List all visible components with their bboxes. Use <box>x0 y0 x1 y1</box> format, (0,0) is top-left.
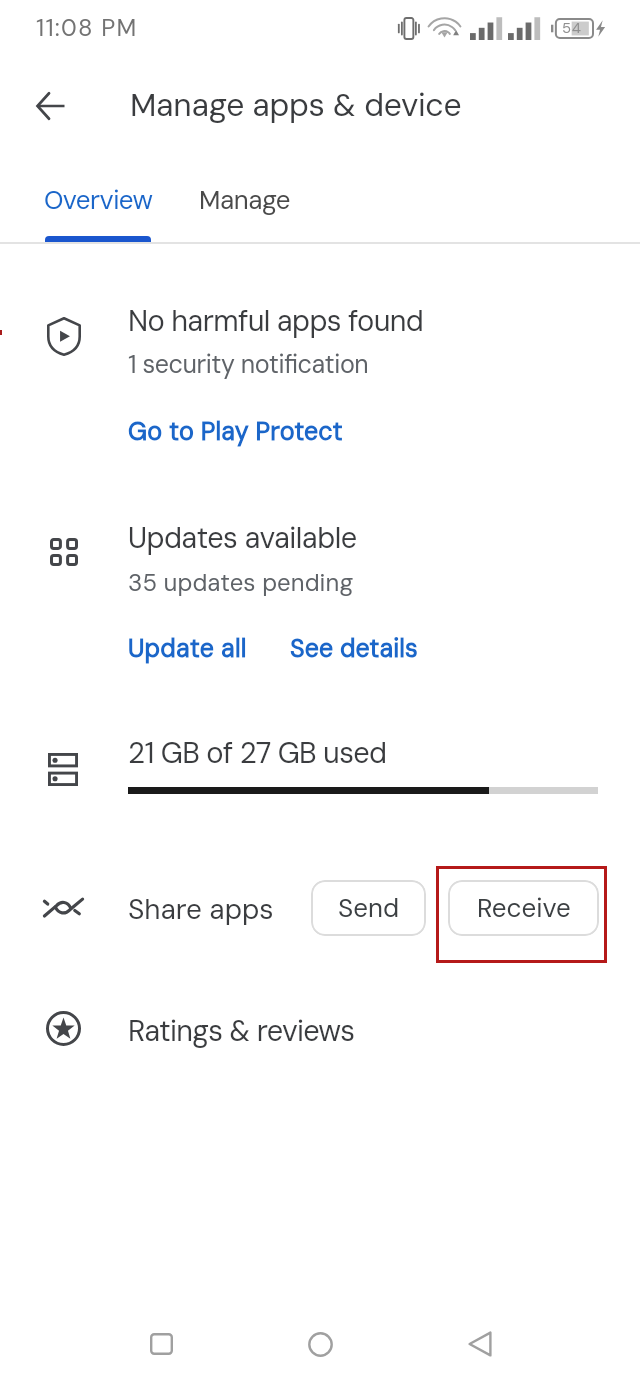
staticText: Overview <box>44 183 153 217</box>
button[interactable]: Home <box>279 1306 361 1382</box>
button[interactable]: Recent apps <box>120 1306 202 1382</box>
button[interactable]: Ratings & reviews <box>0 990 640 1072</box>
staticText: 54 <box>562 18 582 38</box>
staticText: 11:08 PM <box>36 12 138 43</box>
staticText: No harmful apps found <box>128 302 424 340</box>
button[interactable]: See details <box>282 630 425 672</box>
staticText: Ratings & reviews <box>128 1012 355 1050</box>
staticText: Updates available <box>128 519 357 557</box>
staticText: 1 security notification <box>128 348 369 381</box>
button[interactable]: Overview <box>26 167 170 243</box>
staticText: Receive <box>477 891 571 925</box>
button[interactable]: Back <box>26 82 74 130</box>
button[interactable]: Manage <box>180 167 310 243</box>
staticText: 35 updates pending <box>128 567 354 598</box>
staticText: Manage <box>199 183 290 217</box>
staticText: 21 GB of 27 GB used <box>128 734 387 772</box>
button[interactable]: Back <box>439 1306 521 1382</box>
button[interactable]: Receive <box>448 880 599 936</box>
staticText: Update all <box>128 632 247 665</box>
staticText: Share apps <box>128 891 274 927</box>
button[interactable]: Go to Play Protect <box>120 412 350 454</box>
button[interactable]: Update all <box>120 630 254 672</box>
staticText: Manage apps & device <box>130 84 462 126</box>
staticText: Send <box>338 891 400 925</box>
button[interactable]: Send <box>311 880 426 936</box>
staticText: Go to Play Protect <box>128 415 343 448</box>
staticText: See details <box>290 632 418 665</box>
